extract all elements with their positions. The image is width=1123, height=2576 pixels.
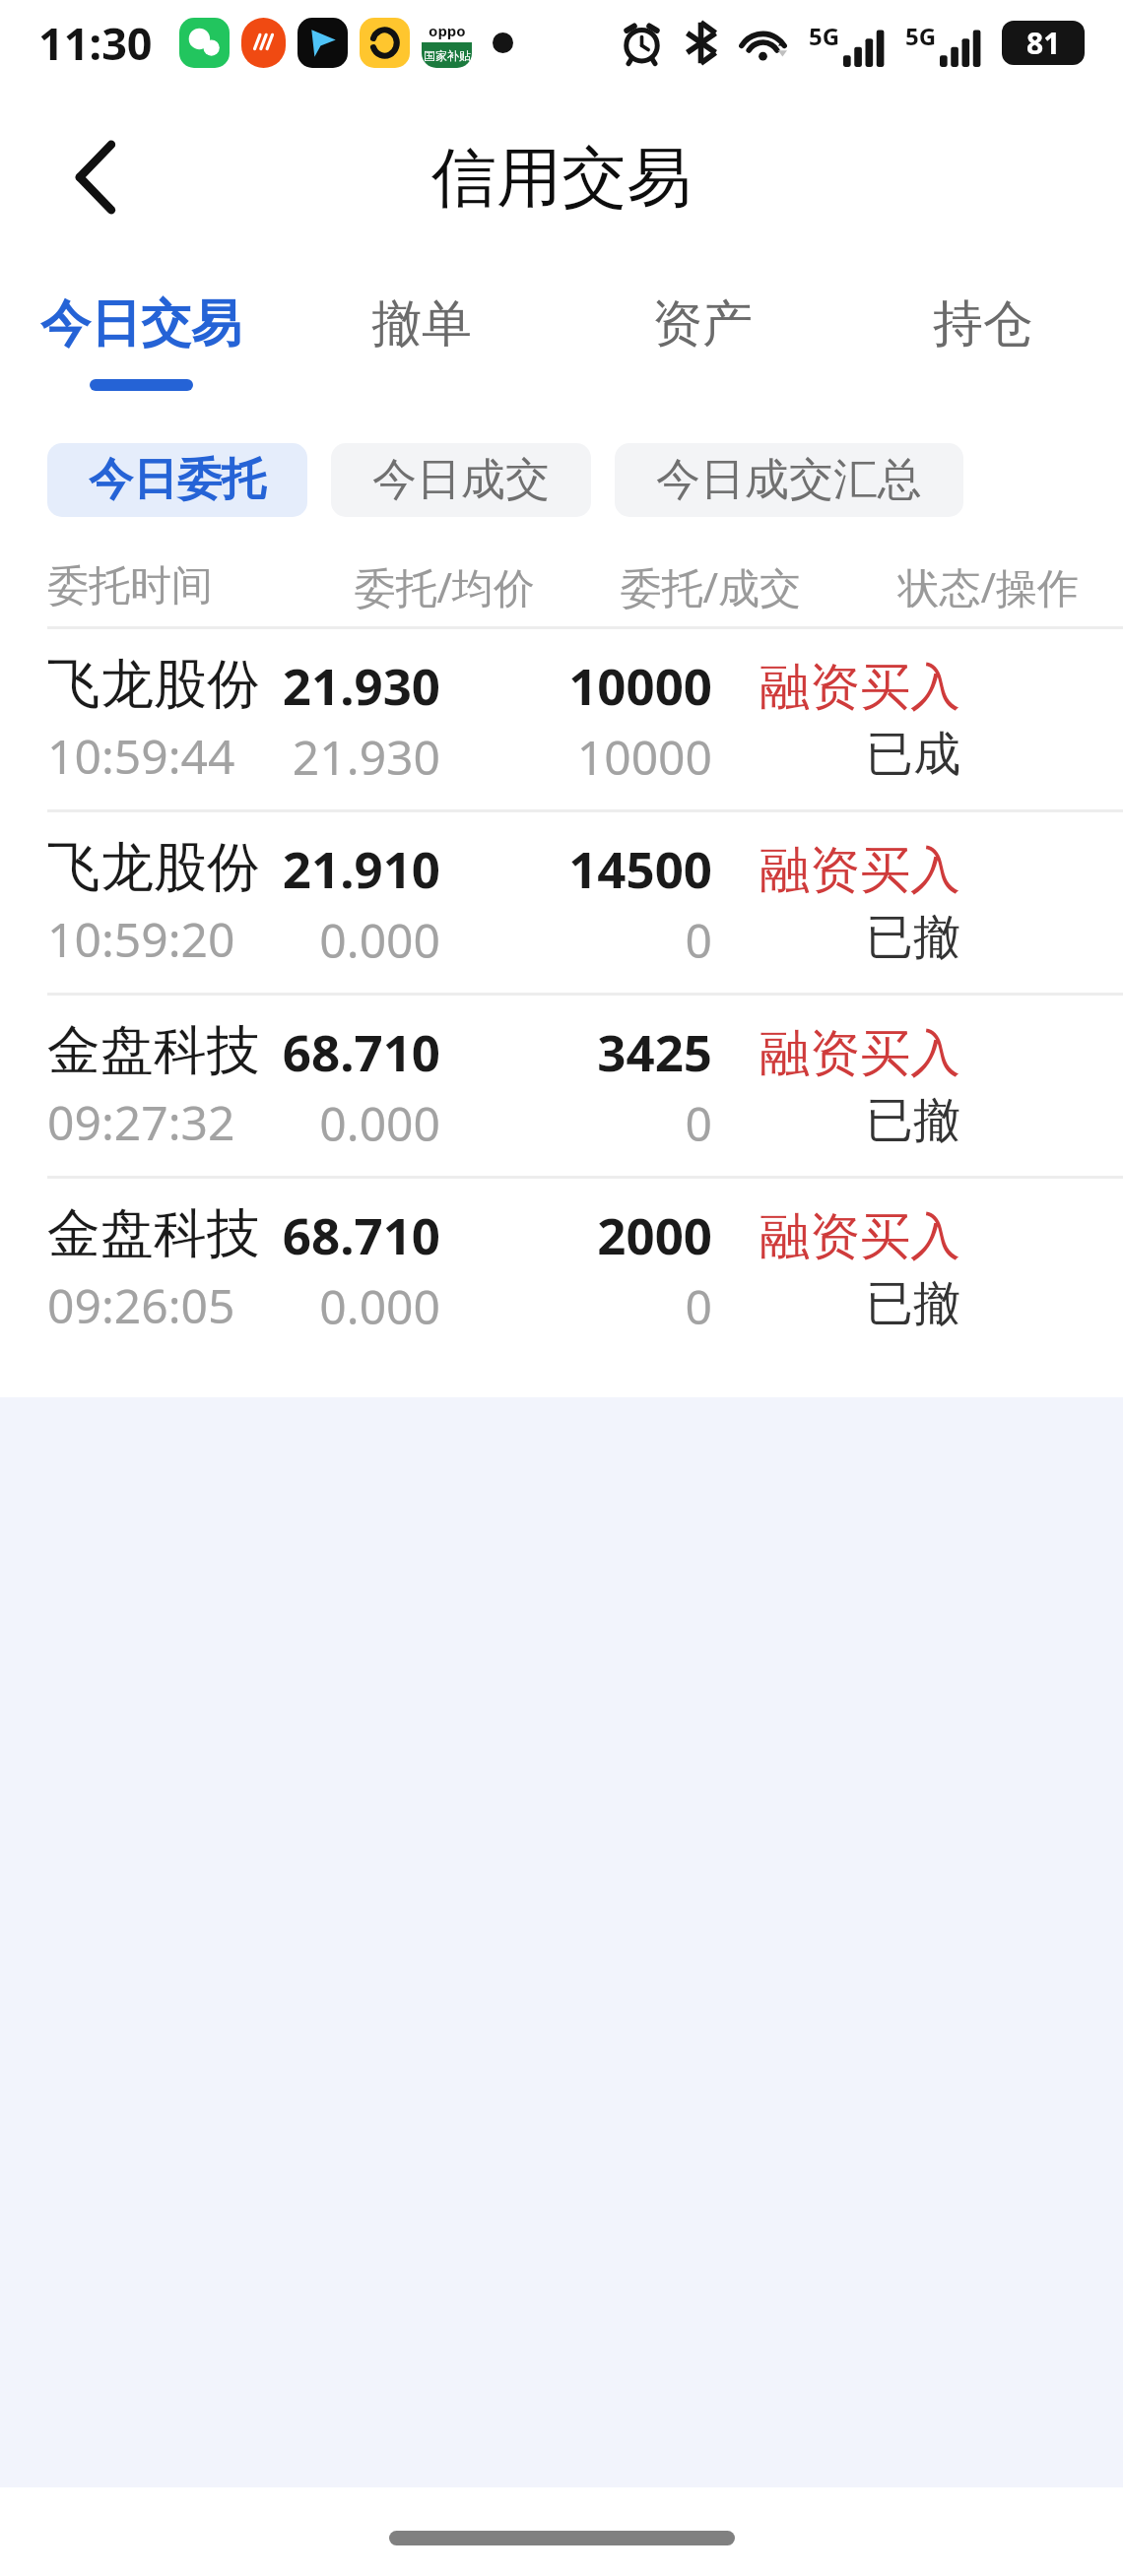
staticText: 0 xyxy=(476,908,712,972)
staticText: 21.930 xyxy=(186,725,440,789)
staticText: 21.910 xyxy=(186,834,440,902)
staticText: 国家补贴 xyxy=(424,48,471,63)
button[interactable]: 资产 xyxy=(561,269,842,431)
staticText: 状态/操作 xyxy=(813,558,1079,614)
button[interactable]: 撤单 xyxy=(281,269,561,431)
staticText: 2000 xyxy=(476,1200,712,1268)
staticText: 已撤 xyxy=(748,908,960,967)
staticText: 09:27:32 xyxy=(47,1090,235,1154)
staticText: 10000 xyxy=(476,651,712,719)
button[interactable]: 飞龙股份 xyxy=(0,626,1123,809)
staticText: 撤单 xyxy=(371,292,472,355)
staticText: 0 xyxy=(476,1091,712,1155)
button[interactable]: 今日交易 xyxy=(0,269,281,431)
staticText: 今日委托 xyxy=(89,452,266,508)
staticText: 0.000 xyxy=(186,1091,440,1155)
staticText: 0.000 xyxy=(186,1274,440,1338)
staticText: 10:59:44 xyxy=(47,724,235,788)
staticText: 金盘科技 xyxy=(47,1017,260,1084)
staticText: 融资买入 xyxy=(748,656,960,719)
button[interactable]: 飞龙股份 xyxy=(0,809,1123,993)
staticText: 09:26:05 xyxy=(47,1273,235,1337)
staticText: 今日成交汇总 xyxy=(656,452,922,508)
staticText: 今日交易 xyxy=(40,292,241,355)
staticText: 今日成交 xyxy=(372,452,550,508)
staticText: 飞龙股份 xyxy=(47,651,260,718)
button[interactable]: 今日委托 xyxy=(47,443,307,517)
staticText: 已撤 xyxy=(748,1091,960,1150)
staticText: 68.710 xyxy=(186,1017,440,1085)
staticText: 0.000 xyxy=(186,908,440,972)
button[interactable]: 金盘科技 xyxy=(0,993,1123,1176)
button[interactable]: 金盘科技 xyxy=(0,1176,1123,1359)
staticText: 5G xyxy=(809,20,840,52)
staticText: 81 xyxy=(1026,23,1061,63)
button[interactable]: Back xyxy=(18,100,171,254)
staticText: 飞龙股份 xyxy=(47,834,260,901)
button[interactable]: 今日成交 xyxy=(331,443,591,517)
staticText: 10:59:20 xyxy=(47,907,235,971)
staticText: 持仓 xyxy=(933,292,1033,355)
staticText: 委托/均价 xyxy=(281,558,535,614)
staticText: 融资买入 xyxy=(748,1022,960,1085)
staticText: 5G xyxy=(905,20,937,52)
staticText: oppo xyxy=(429,21,466,40)
staticText: 14500 xyxy=(476,834,712,902)
staticText: 委托/成交 xyxy=(547,558,801,614)
staticText: 11:30 xyxy=(38,13,153,73)
staticText: 已成 xyxy=(748,725,960,784)
button[interactable]: 持仓 xyxy=(842,269,1123,431)
staticText: 信用交易 xyxy=(431,137,692,219)
staticText: 融资买入 xyxy=(748,1205,960,1268)
staticText: 融资买入 xyxy=(748,839,960,902)
button[interactable]: 今日成交汇总 xyxy=(615,443,963,517)
staticText: 金盘科技 xyxy=(47,1200,260,1267)
staticText: 委托时间 xyxy=(47,560,213,612)
staticText: 21.930 xyxy=(186,651,440,719)
staticText: 10000 xyxy=(476,725,712,789)
staticText: 资产 xyxy=(652,292,753,355)
staticText: 已撤 xyxy=(748,1274,960,1333)
staticText: 3425 xyxy=(476,1017,712,1085)
staticText: 0 xyxy=(476,1274,712,1338)
staticText: 68.710 xyxy=(186,1200,440,1268)
